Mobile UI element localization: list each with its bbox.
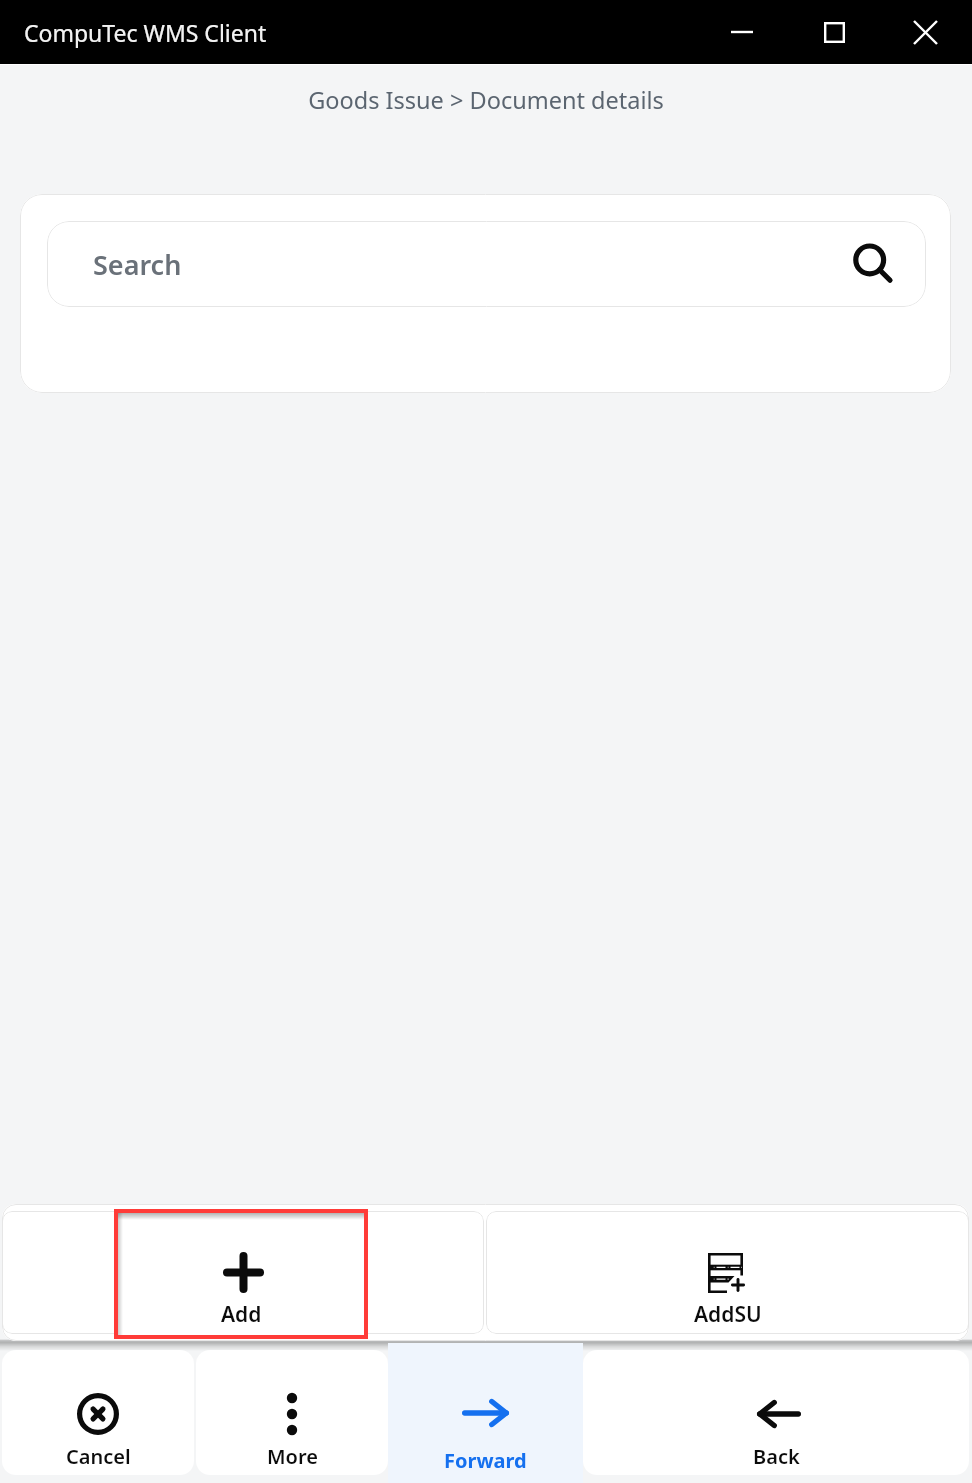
button[interactable]: Forward bbox=[388, 1343, 583, 1483]
staticText: Search bbox=[93, 246, 840, 283]
staticText: Back bbox=[753, 1443, 800, 1470]
staticText: Add bbox=[221, 1300, 262, 1329]
staticText: Goods Issue > Document details bbox=[308, 84, 664, 116]
staticText: Cancel bbox=[66, 1443, 131, 1470]
staticText: Forward bbox=[444, 1447, 527, 1474]
staticText: CompuTec WMS Client bbox=[24, 17, 267, 48]
button[interactable]: Maximize bbox=[784, 0, 878, 64]
button[interactable]: Add bbox=[114, 1209, 368, 1339]
staticText: More bbox=[267, 1443, 318, 1470]
button[interactable]: Cancel bbox=[2, 1350, 194, 1475]
button[interactable]: Add bbox=[2, 1211, 484, 1334]
staticText: AddSU bbox=[694, 1300, 762, 1329]
button[interactable]: Search bbox=[47, 221, 926, 307]
button[interactable]: Search bbox=[840, 221, 926, 307]
button[interactable]: Minimize bbox=[690, 0, 784, 64]
button[interactable]: Back bbox=[583, 1350, 969, 1475]
button[interactable]: Close bbox=[878, 0, 972, 64]
button[interactable]: AddSU bbox=[486, 1211, 969, 1334]
button[interactable]: More bbox=[196, 1350, 388, 1475]
